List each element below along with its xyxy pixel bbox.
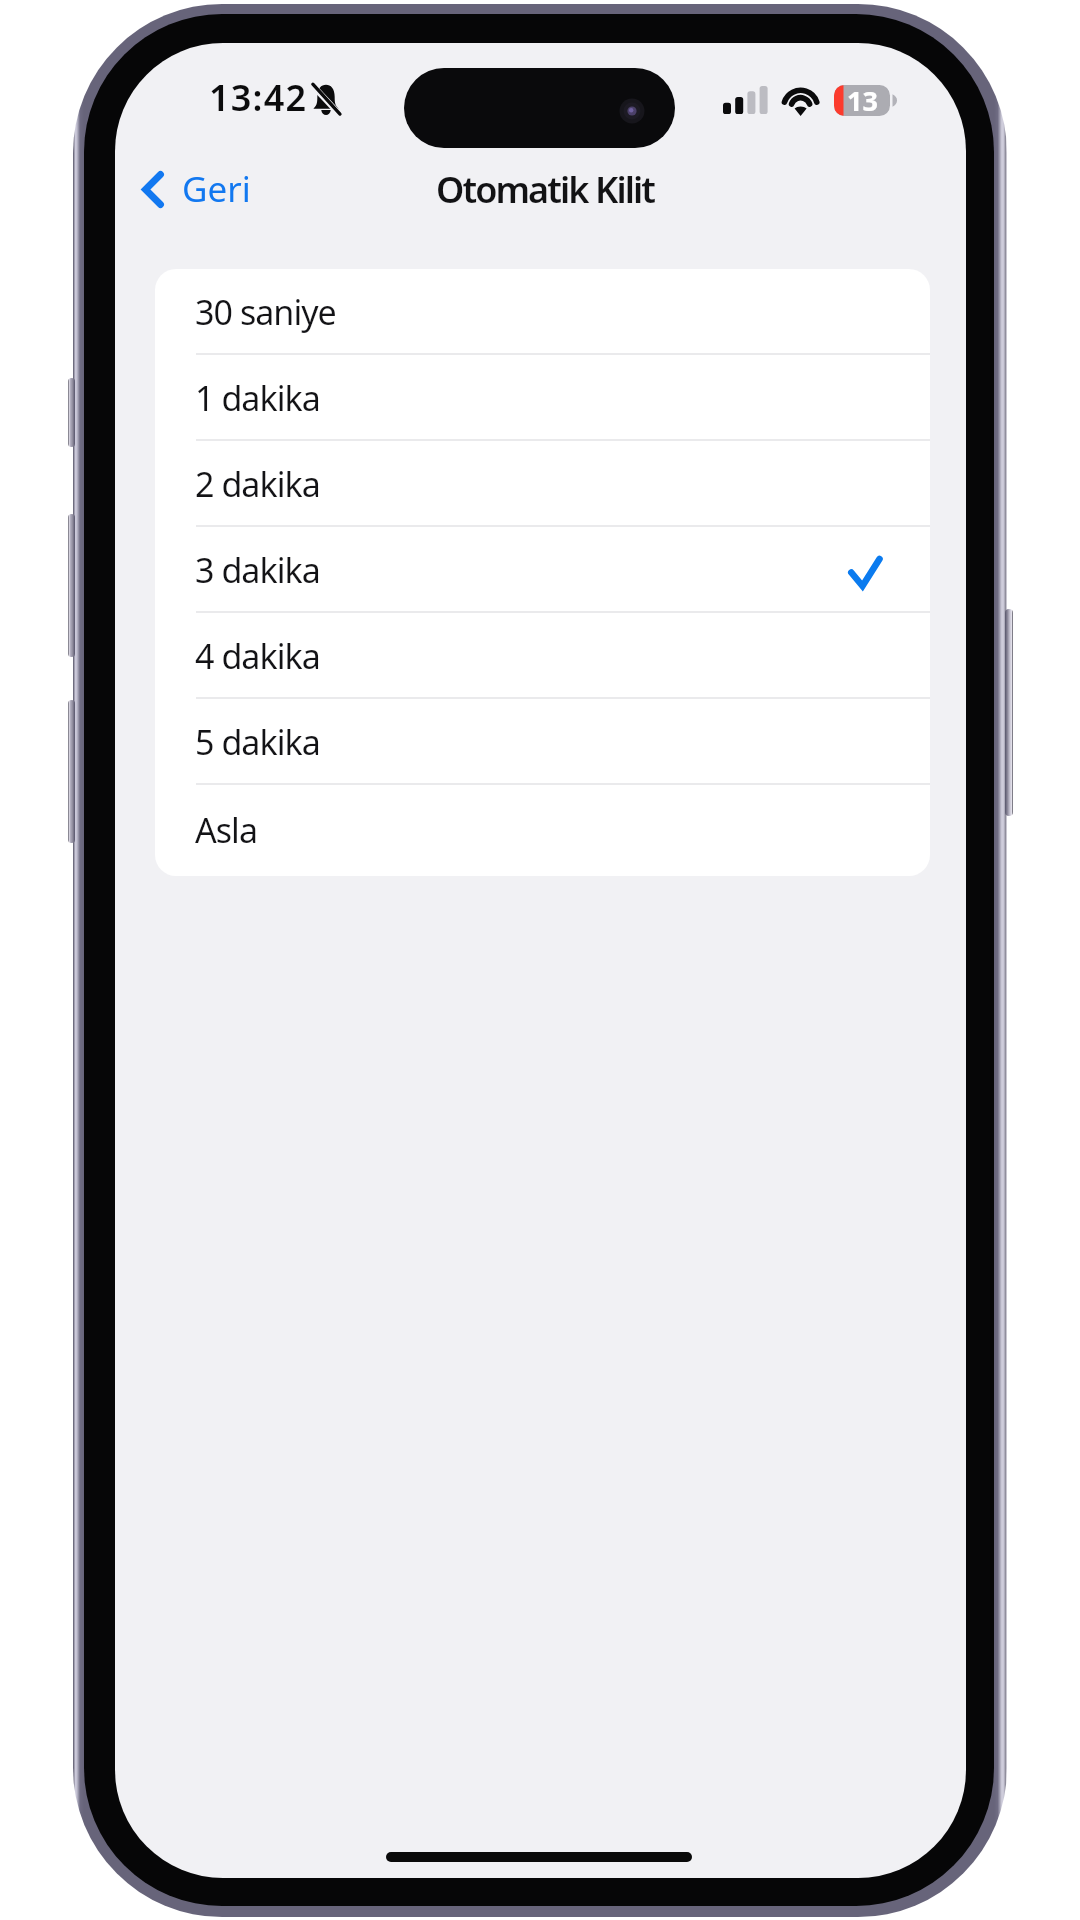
staticText: Asla [195, 807, 258, 853]
staticText: 2 dakika [195, 461, 320, 507]
button[interactable]: Asla [155, 785, 930, 874]
staticText: 5 dakika [195, 719, 320, 765]
staticText: 3 dakika [195, 547, 320, 593]
staticText: 30 saniye [195, 289, 336, 335]
button[interactable]: 2 dakika [155, 441, 930, 527]
button[interactable]: 1 dakika [155, 355, 930, 441]
staticText: 13:42 [209, 73, 308, 122]
button[interactable]: 4 dakika [155, 613, 930, 699]
staticText: Geri [182, 165, 251, 213]
button[interactable]: 3 dakika [155, 527, 930, 613]
button[interactable]: 5 dakika [155, 699, 930, 785]
staticText: 4 dakika [195, 633, 320, 679]
staticText: Otomatik Kilit [436, 165, 654, 214]
button[interactable]: 30 saniye [155, 269, 930, 355]
staticText: 13 [847, 82, 878, 119]
button[interactable]: Geri [128, 152, 269, 226]
staticText: 1 dakika [195, 375, 320, 421]
